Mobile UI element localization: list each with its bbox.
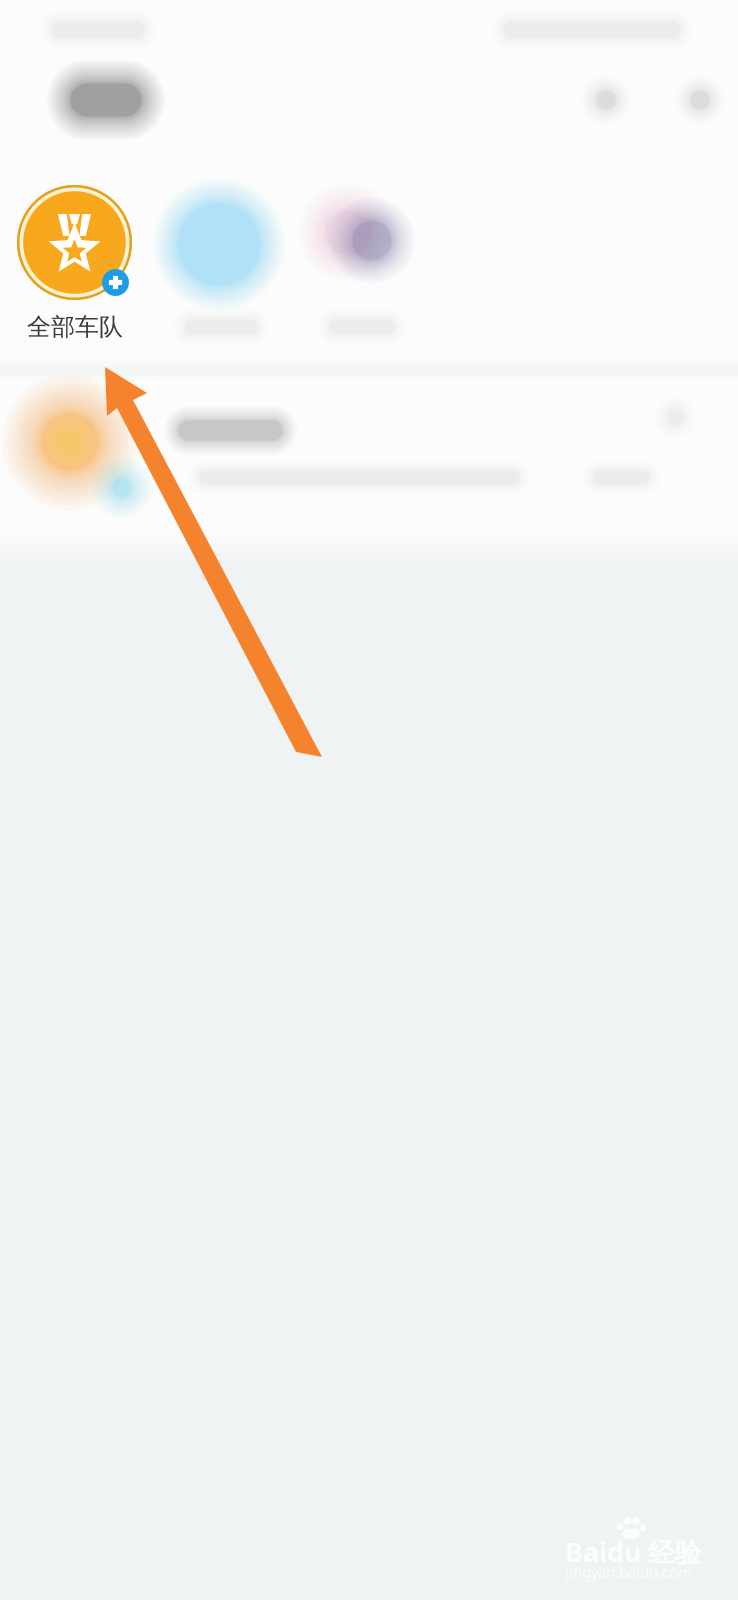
button[interactable]: 全部车队 <box>0 170 146 360</box>
button[interactable]: Fleet entry <box>0 383 738 543</box>
button[interactable]: Shortcut <box>291 170 437 360</box>
button[interactable]: Shortcut <box>146 170 292 360</box>
staticText: Baidu 经验 <box>565 1534 702 1570</box>
button[interactable]: Messages <box>657 57 738 143</box>
button[interactable]: City selector <box>21 41 191 159</box>
staticText: 全部车队 <box>27 312 123 342</box>
staticText: jingyan.baidu.com <box>565 1562 692 1581</box>
button[interactable]: Search <box>563 57 649 143</box>
